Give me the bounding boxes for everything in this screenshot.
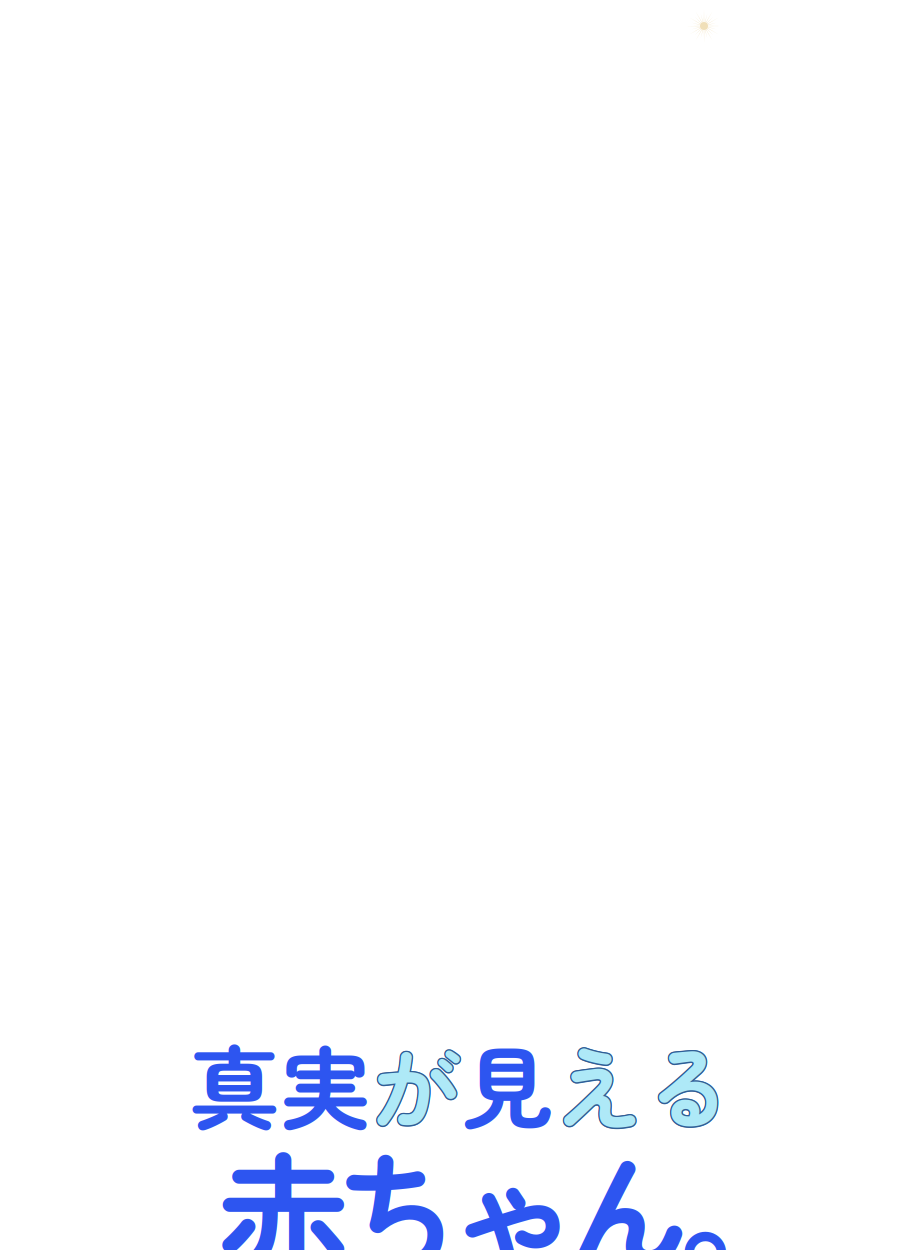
staticText: が xyxy=(370,1017,461,1149)
staticText: える xyxy=(554,1016,736,1148)
staticText: が xyxy=(372,1017,463,1149)
staticText: える xyxy=(554,1018,736,1150)
staticText: が xyxy=(372,1018,463,1150)
staticText: 赤ちゃん。 xyxy=(216,1110,809,1250)
staticText: 見 xyxy=(462,1017,553,1149)
staticText: える xyxy=(552,1016,734,1148)
staticText: が xyxy=(372,1016,463,1148)
staticText: える xyxy=(552,1017,734,1149)
staticText: が xyxy=(371,1019,462,1150)
staticText: える xyxy=(553,1017,735,1149)
staticText: が xyxy=(370,1016,461,1148)
staticText: える xyxy=(553,1016,735,1147)
staticText: が xyxy=(371,1016,462,1147)
staticText: が xyxy=(371,1017,462,1149)
button[interactable]: 真実が見える赤ちゃん。 xyxy=(0,0,900,1250)
staticText: える xyxy=(554,1017,736,1149)
staticText: える xyxy=(552,1018,734,1150)
staticText: 真実 xyxy=(189,1017,371,1149)
staticText: が xyxy=(370,1018,461,1150)
staticText: える xyxy=(553,1019,735,1150)
